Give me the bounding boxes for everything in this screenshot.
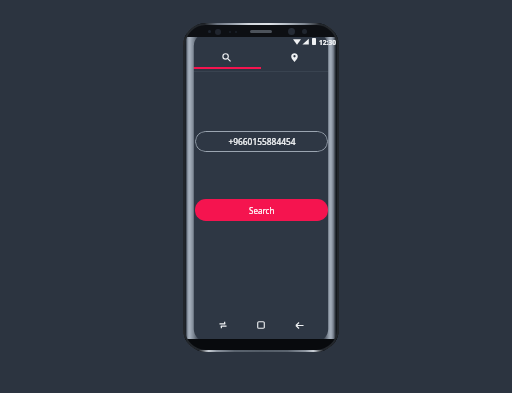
button[interactable]: Search [195, 199, 328, 221]
button[interactable]: Recents [211, 314, 235, 336]
staticText: 12:30 [319, 38, 336, 45]
button[interactable]: Home [249, 314, 273, 336]
button[interactable]: Search tab [192, 45, 260, 69]
button[interactable]: Nearby tab [260, 45, 329, 69]
staticText: Search [249, 205, 275, 216]
button[interactable]: +9660155884454 [195, 131, 328, 152]
staticText: +9660155884454 [228, 136, 296, 147]
button[interactable]: Back [287, 314, 311, 336]
